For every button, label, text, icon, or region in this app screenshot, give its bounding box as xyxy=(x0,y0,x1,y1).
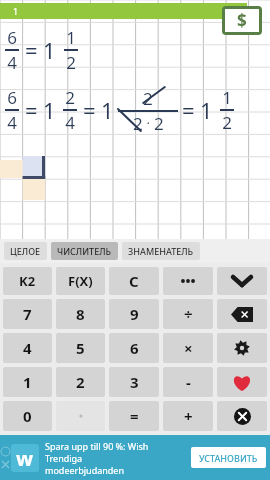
staticText: = xyxy=(83,95,96,125)
staticText: 6 xyxy=(7,26,17,49)
button[interactable]: × xyxy=(163,333,213,363)
button[interactable]: - xyxy=(163,367,213,397)
staticText: 8 xyxy=(76,304,85,324)
staticText: 3 xyxy=(130,372,139,392)
button[interactable]: ЦЕЛОЕ xyxy=(4,242,47,260)
staticText: 2 xyxy=(154,112,164,133)
staticText: = xyxy=(130,406,139,426)
staticText: 2 xyxy=(143,87,153,110)
button[interactable]: + xyxy=(163,401,213,431)
staticText: 0 xyxy=(23,406,32,426)
staticText: = xyxy=(182,95,195,125)
staticText: ÷ xyxy=(184,304,193,324)
staticText: 6 xyxy=(130,338,139,358)
button[interactable]: ЧИСЛИТЕЛЬ xyxy=(51,242,118,260)
staticText: 1 xyxy=(23,372,32,392)
button[interactable]: ЗНАМЕНАТЕЛЬ xyxy=(122,242,200,260)
staticText: 2 xyxy=(133,112,143,133)
staticText: = xyxy=(25,35,38,65)
button[interactable]: 6 xyxy=(109,333,159,363)
button[interactable]: C xyxy=(109,267,159,295)
staticText: 4 xyxy=(7,51,17,74)
staticText: Spara upp till 90 %: Wish Trendiga xyxy=(45,440,187,464)
staticText: C xyxy=(129,271,139,291)
staticText: = xyxy=(25,95,38,125)
button[interactable]: F(X) xyxy=(56,267,105,295)
staticText: F(X) xyxy=(68,272,93,290)
staticText: 6 xyxy=(7,86,17,109)
staticText: 1 xyxy=(43,35,56,65)
staticText: 2 xyxy=(65,86,75,109)
staticText: · xyxy=(143,114,154,132)
staticText: 1 xyxy=(13,5,19,17)
staticText: ЧИСЛИТЕЛЬ xyxy=(57,245,112,257)
staticText: 7 xyxy=(23,304,32,324)
staticText: w xyxy=(16,445,34,472)
staticText: 2 xyxy=(76,372,85,392)
other: Ad info xyxy=(1,447,10,456)
staticText: 4 xyxy=(65,111,75,134)
button[interactable]: 7 xyxy=(3,299,52,329)
other: Close ad xyxy=(1,460,10,469)
staticText: 5 xyxy=(76,338,85,358)
staticText: ЦЕЛОЕ xyxy=(10,245,41,257)
button[interactable]: 0 xyxy=(3,401,52,431)
staticText: 4 xyxy=(7,111,17,134)
staticText: × xyxy=(184,338,193,358)
staticText: 2 xyxy=(222,111,232,134)
staticText: 1 xyxy=(66,26,76,49)
staticText: + xyxy=(184,406,193,426)
button[interactable]: 8 xyxy=(56,299,105,329)
staticText: modeerbjudanden xyxy=(45,464,125,476)
staticText: 1 xyxy=(200,95,213,125)
button[interactable]: ⌫ xyxy=(217,299,267,329)
staticText: K2 xyxy=(19,272,36,290)
button[interactable]: 9 xyxy=(109,299,159,329)
staticText: 4 xyxy=(23,338,32,358)
button[interactable]: ⌄ xyxy=(217,267,267,295)
staticText: $ xyxy=(237,9,247,32)
button[interactable]: 1 xyxy=(3,367,52,397)
button[interactable]: 4 xyxy=(3,333,52,363)
staticText: - xyxy=(186,372,191,392)
staticText: ЗНАМЕНАТЕЛЬ xyxy=(128,245,194,257)
button[interactable]: ÷ xyxy=(163,299,213,329)
button[interactable]: ⚙ xyxy=(217,333,267,363)
staticText: 1 xyxy=(43,95,56,125)
button[interactable]: … xyxy=(163,267,213,295)
button[interactable]: УСТАНОВИТЬ xyxy=(191,447,266,468)
staticText: 9 xyxy=(130,304,139,324)
button[interactable]: 5 xyxy=(56,333,105,363)
staticText: 2 xyxy=(66,51,76,74)
staticText: 1 xyxy=(101,95,114,125)
button[interactable]: 3 xyxy=(109,367,159,397)
button[interactable]: Currency xyxy=(225,9,259,32)
button[interactable]: = xyxy=(109,401,159,431)
button[interactable]: 2 xyxy=(56,367,105,397)
staticText: УСТАНОВИТЬ xyxy=(199,452,258,464)
staticText: 1 xyxy=(222,86,232,109)
button[interactable]: K2 xyxy=(3,267,52,295)
button[interactable]: ♥ xyxy=(217,367,267,397)
button[interactable]: ✕ xyxy=(217,401,267,431)
